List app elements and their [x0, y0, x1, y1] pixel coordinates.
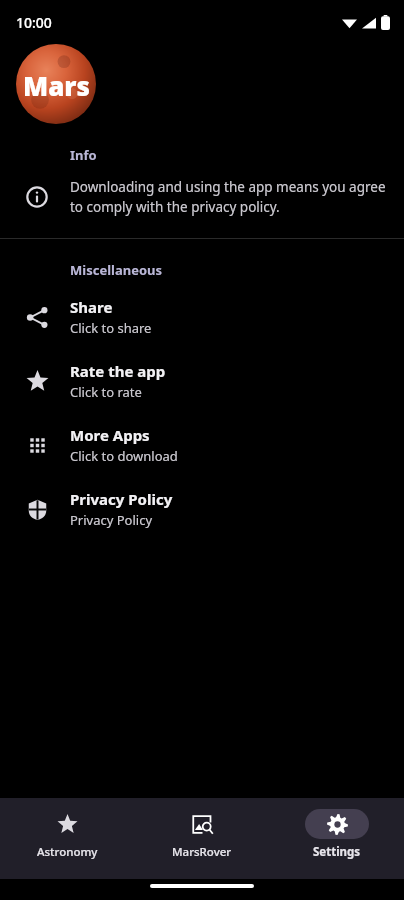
staticText: Privacy Policy — [70, 489, 173, 509]
button[interactable]: More Apps — [0, 413, 404, 477]
staticText: Click to rate — [70, 383, 142, 401]
staticText: More Apps — [70, 425, 150, 445]
staticText: 10:00 — [16, 13, 52, 32]
staticText: Info — [70, 146, 97, 164]
staticText: Downloading and using the app means you … — [70, 178, 386, 216]
button[interactable]: Astronomy — [0, 798, 134, 860]
button[interactable]: Settings — [269, 798, 404, 860]
staticText: Miscellaneous — [70, 261, 162, 279]
button[interactable]: Share — [0, 285, 404, 349]
staticText: Settings — [313, 844, 361, 860]
staticText: Privacy Policy — [70, 511, 153, 529]
button[interactable]: Rate the app — [0, 349, 404, 413]
staticText: Click to download — [70, 447, 178, 465]
staticText: Astronomy — [37, 844, 98, 860]
staticText: Mars — [23, 68, 90, 103]
button[interactable]: Downloading and using the app means you … — [0, 164, 404, 230]
other: MarsRover photos — [192, 814, 213, 835]
button[interactable]: MarsRover photos — [134, 798, 269, 860]
staticText: MarsRover — [172, 844, 232, 860]
staticText: Rate the app — [70, 361, 166, 381]
staticText: Click to share — [70, 319, 152, 337]
staticText: Share — [70, 297, 113, 317]
button[interactable]: Privacy Policy — [0, 477, 404, 541]
other: Settings — [327, 814, 348, 835]
